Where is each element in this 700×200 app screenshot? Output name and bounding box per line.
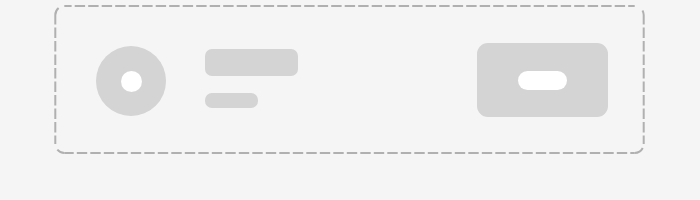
button[interactable]: Action [477,43,608,117]
button[interactable]: Action [54,5,645,154]
